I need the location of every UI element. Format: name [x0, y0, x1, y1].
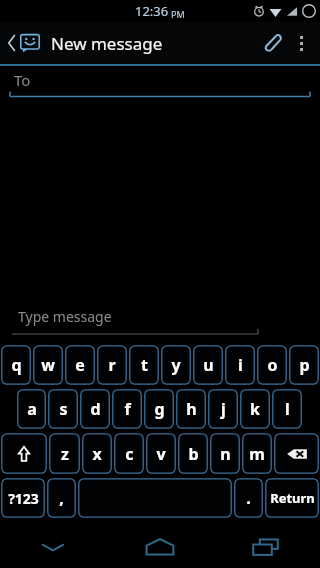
button[interactable]: o: [257, 345, 287, 385]
staticText: w: [41, 354, 55, 376]
button[interactable]: k: [240, 389, 270, 429]
button[interactable]: Navigate up: [6, 33, 43, 53]
staticText: q: [11, 354, 22, 376]
staticText: ?123: [8, 489, 39, 508]
button[interactable]: f: [112, 389, 142, 429]
staticText: .: [246, 487, 251, 509]
staticText: t: [141, 354, 148, 376]
button[interactable]: z: [49, 433, 80, 474]
button[interactable]: i: [225, 345, 255, 385]
button[interactable]: u: [193, 345, 223, 385]
staticText: ,: [59, 487, 64, 509]
button[interactable]: Return: [265, 478, 319, 518]
button[interactable]: ?123: [1, 478, 45, 518]
staticText: i: [238, 354, 243, 376]
staticText: y: [171, 354, 181, 376]
staticText: g: [154, 398, 165, 420]
button[interactable]: Backspace: [274, 433, 319, 474]
button[interactable]: To: [0, 66, 320, 98]
button[interactable]: e: [65, 345, 95, 385]
staticText: b: [188, 443, 199, 465]
button[interactable]: b: [178, 433, 208, 474]
button[interactable]: d: [80, 389, 110, 429]
button[interactable]: Type message: [0, 300, 320, 338]
button[interactable]: s: [48, 389, 78, 429]
staticText: a: [27, 398, 37, 420]
staticText: m: [249, 443, 265, 465]
button[interactable]: Recent apps: [213, 526, 320, 568]
staticText: p: [299, 354, 310, 376]
staticText: u: [203, 354, 214, 376]
staticText: l: [285, 398, 290, 420]
staticText: Return: [270, 489, 315, 507]
staticText: Type message: [18, 307, 112, 326]
staticText: k: [250, 398, 260, 420]
button[interactable]: a: [17, 389, 46, 429]
button[interactable]: y: [161, 345, 191, 385]
staticText: x: [92, 443, 102, 465]
button[interactable]: g: [144, 389, 174, 429]
staticText: o: [267, 354, 278, 376]
button[interactable]: t: [129, 345, 159, 385]
button[interactable]: j: [208, 389, 238, 429]
staticText: n: [220, 443, 231, 465]
button[interactable]: l: [272, 389, 302, 429]
staticText: 12:36: [135, 2, 169, 20]
button[interactable]: Hide keyboard: [0, 526, 106, 568]
button[interactable]: n: [210, 433, 240, 474]
button[interactable]: Shift: [1, 433, 47, 474]
staticText: v: [156, 443, 166, 465]
button[interactable]: p: [289, 345, 319, 385]
button[interactable]: Home: [106, 526, 213, 568]
button[interactable]: v: [146, 433, 176, 474]
button[interactable]: w: [33, 345, 63, 385]
staticText: r: [108, 354, 116, 376]
button[interactable]: m: [242, 433, 272, 474]
staticText: c: [125, 443, 134, 465]
staticText: To: [14, 70, 31, 90]
staticText: j: [221, 398, 226, 420]
button[interactable]: More options: [288, 22, 314, 64]
staticText: s: [59, 398, 68, 420]
button[interactable]: .: [234, 478, 263, 518]
staticText: New message: [51, 32, 163, 55]
button[interactable]: c: [114, 433, 144, 474]
button[interactable]: q: [1, 345, 31, 385]
button[interactable]: h: [176, 389, 206, 429]
button[interactable]: ,: [47, 478, 76, 518]
staticText: h: [186, 398, 197, 420]
staticText: e: [75, 354, 85, 376]
button[interactable]: [78, 478, 232, 518]
staticText: PM: [171, 8, 185, 20]
staticText: z: [61, 443, 69, 465]
button[interactable]: x: [82, 433, 112, 474]
button[interactable]: Attach: [254, 22, 288, 64]
staticText: f: [124, 398, 131, 420]
button[interactable]: r: [97, 345, 127, 385]
staticText: d: [90, 398, 101, 420]
